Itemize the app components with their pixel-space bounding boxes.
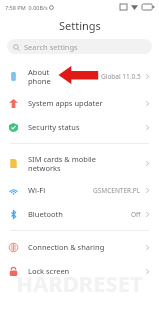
- staticText: SIM cards & mobile networks: [28, 154, 97, 173]
- other: About phone: [9, 72, 18, 81]
- staticText: Bluetooth: [28, 209, 63, 219]
- button[interactable]: Wi-Fi: [0, 178, 159, 202]
- staticText: HARDRESET: [0, 268, 159, 298]
- other: Connection and sharing: [9, 243, 18, 252]
- staticText: Settings: [59, 18, 101, 33]
- staticText: About phone: [28, 67, 51, 86]
- staticText: Lock screen: [28, 266, 70, 276]
- button[interactable]: Connection and sharing: [0, 235, 159, 259]
- button[interactable]: Lock screen: [0, 259, 159, 283]
- button[interactable]: System apps updater: [0, 91, 159, 115]
- button[interactable]: Search settings: [7, 39, 152, 54]
- other: Security status: [9, 123, 18, 132]
- staticText: Wi-Fi: [28, 185, 46, 195]
- button[interactable]: Security status: [0, 115, 159, 139]
- other: Wi-Fi: [9, 186, 18, 195]
- other: Bluetooth: [9, 210, 18, 219]
- button[interactable]: SIM cards and mobile networks: [0, 148, 159, 178]
- button[interactable]: About phone: [0, 61, 159, 91]
- staticText: 7:58 PM 0.00B/s: [5, 4, 48, 11]
- other: SIM cards and mobile networks: [9, 159, 18, 168]
- staticText: Global 11.0.5: [101, 72, 141, 81]
- staticText: Off: [131, 210, 141, 219]
- staticText: GSMCENTER.PL: [93, 186, 141, 195]
- staticText: System apps updater: [28, 98, 103, 108]
- other: Lock screen: [9, 267, 18, 276]
- other: System apps updater: [9, 99, 18, 108]
- staticText: Connection & sharing: [28, 242, 105, 252]
- staticText: Search settings: [24, 42, 78, 52]
- button[interactable]: Bluetooth: [0, 202, 159, 226]
- staticText: Security status: [28, 122, 80, 132]
